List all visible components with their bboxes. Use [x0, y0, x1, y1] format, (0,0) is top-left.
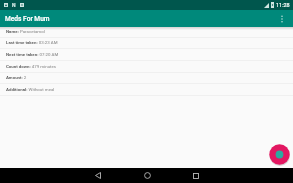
button[interactable]: Count down: 479 minutes	[0, 63, 293, 74]
button[interactable]	[90, 168, 106, 183]
button[interactable]: Next time taken: 07:20 AM	[0, 51, 293, 62]
staticText: Count down: 479 minutes	[6, 64, 57, 69]
staticText: Meds For Mum	[5, 15, 50, 23]
staticText: N	[12, 2, 16, 8]
staticText: Last time taken: 03:23 AM	[6, 40, 58, 45]
button[interactable]: Amount: 2	[0, 74, 293, 85]
button[interactable]	[277, 14, 287, 24]
button[interactable]: Additional: Without meal	[0, 86, 293, 97]
staticText: Amount: 2	[6, 75, 27, 80]
staticText: Next time taken: 07:20 AM	[6, 52, 59, 57]
button[interactable]: Last time taken: 03:23 AM	[0, 39, 293, 50]
staticText: Additional: Without meal	[6, 87, 55, 92]
button[interactable]	[188, 168, 204, 183]
button[interactable]	[269, 144, 290, 165]
staticText: Name: Paracetamol	[6, 29, 45, 34]
staticText: 11:28	[276, 2, 290, 8]
button[interactable]	[139, 168, 155, 183]
button[interactable]: Name: Paracetamol	[0, 28, 293, 39]
